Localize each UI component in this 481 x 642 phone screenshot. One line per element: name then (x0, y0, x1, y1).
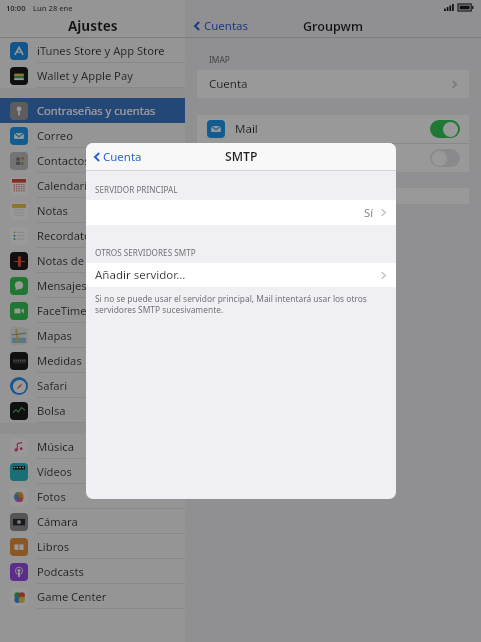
staticText: Cuenta (103, 149, 142, 165)
staticText: Safari (37, 378, 68, 393)
staticText: iTunes Store y App Store (37, 43, 165, 58)
staticText: Lun 28 ene (33, 3, 73, 13)
staticText: Libros (37, 539, 70, 554)
staticText: SMTP (225, 148, 258, 165)
button[interactable]: Cámara (0, 509, 185, 534)
staticText: Notas (37, 203, 68, 218)
button[interactable]: Fotos (0, 484, 185, 509)
button[interactable]: Notas (0, 198, 185, 223)
staticText: Si no se puede usar el servidor principa… (95, 293, 384, 315)
button[interactable]: Podcasts (0, 559, 185, 584)
button[interactable]: Safari (0, 373, 185, 398)
button[interactable]: Game Center (0, 584, 185, 609)
button[interactable]: iTunes Store y App Store (0, 38, 185, 63)
button[interactable]: Contraseñas y cuentas (0, 98, 185, 123)
staticText: Medidas (37, 353, 82, 368)
button[interactable]: Mensajes (0, 273, 185, 298)
staticText: Calendario (37, 178, 94, 193)
button[interactable]: Bolsa (0, 398, 185, 423)
staticText: Sí (364, 205, 374, 220)
staticText: Música (37, 439, 74, 454)
button[interactable]: Música (0, 434, 185, 459)
staticText: Vídeos (37, 464, 72, 479)
staticText: FaceTime (37, 303, 87, 318)
button[interactable]: Mail (197, 115, 469, 143)
staticText: Cuenta (209, 76, 248, 92)
staticText: 10:00 (6, 3, 26, 13)
staticText: Podcasts (37, 564, 84, 579)
staticText: Mail (235, 121, 258, 137)
button[interactable]: FaceTime (0, 298, 185, 323)
staticText: Game Center (37, 589, 107, 604)
button[interactable]: Calendario (0, 173, 185, 198)
staticText: OTROS SERVIDORES SMTP (95, 247, 196, 258)
staticText: IMAP (209, 54, 230, 65)
button[interactable]: Cuenta (92, 149, 142, 165)
staticText: Notas de Voz (37, 253, 106, 268)
staticText: Mensajes (37, 278, 87, 293)
button[interactable]: Cuentas (192, 18, 249, 34)
staticText: Correo (37, 128, 73, 143)
staticText: Añadir servidor... (95, 267, 186, 283)
button[interactable]: Sí (86, 200, 396, 225)
button[interactable]: Contactos (0, 148, 185, 173)
staticText: Cuentas (204, 18, 249, 34)
staticText: Contraseñas y cuentas (37, 103, 156, 118)
staticText: Cámara (37, 514, 78, 529)
button[interactable]: Recordatorios (0, 223, 185, 248)
button[interactable]: Wallet y Apple Pay (0, 63, 185, 88)
button[interactable] (197, 144, 469, 172)
staticText: Ajustes (68, 17, 118, 35)
button[interactable]: Libros (0, 534, 185, 559)
staticText: Recordatorios (37, 228, 111, 243)
button[interactable]: Medidas (0, 348, 185, 373)
button[interactable]: Añadir servidor... (86, 263, 396, 287)
staticText: Wallet y Apple Pay (37, 68, 133, 83)
button[interactable]: Cuenta (197, 70, 469, 98)
staticText: Contactos (37, 153, 90, 168)
button[interactable]: Notas de Voz (0, 248, 185, 273)
staticText: Fotos (37, 489, 66, 504)
staticText: Mapas (37, 328, 72, 343)
button[interactable]: Vídeos (0, 459, 185, 484)
staticText: Groupwm (303, 18, 363, 35)
button[interactable]: Correo (0, 123, 185, 148)
staticText: Bolsa (37, 403, 66, 418)
staticText: SERVIDOR PRINCIPAL (95, 184, 178, 195)
button[interactable]: Mapas (0, 323, 185, 348)
